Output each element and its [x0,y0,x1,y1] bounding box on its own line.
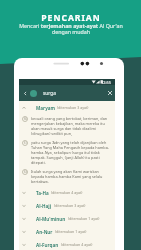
staticText: Ta-Ha [36,190,49,196]
staticText: (ditemukan 1 ayat) [68,216,100,221]
staticText: (ditemukan 4 ayat) [61,242,93,247]
staticText: 12:55 [101,80,111,85]
staticText: Mencari terjemahan ayat-ayat Al Qur'an d… [19,22,123,35]
button[interactable]: 60 [19,114,115,138]
button[interactable]: An-Nur [19,225,115,238]
staticText: yaitu surga 'Adn yang telah dijanjikan o… [31,140,110,165]
staticText: (ditemukan 4 ayat) [51,190,83,195]
button[interactable]: Maryam [19,101,115,114]
staticText: PENCARIAN [41,12,101,24]
staticText: 63 [24,170,27,174]
button[interactable]: Al-Hajj [19,199,115,212]
staticText: Al-Mu'minun [36,216,66,222]
staticText: 61 [24,141,27,145]
staticText: Itulah surga yang akan Kami wariskan kep… [31,169,110,184]
button[interactable]: 63 [19,167,115,186]
staticText: (ditemukan 3 ayat) [57,105,89,110]
staticText: (ditemukan 1 ayat) [55,229,87,234]
staticText: kecuali orang yang bertobat, beriman, da… [31,116,110,136]
button[interactable]: Al-Furqan [19,238,115,250]
staticText: Al-Hajj [36,203,52,209]
button[interactable]: Back [21,89,29,97]
staticText: An-Nur [36,229,53,235]
staticText: Al-Furqan [36,242,59,248]
button[interactable]: Ta-Ha [19,186,115,199]
button[interactable]: Clear search [106,89,114,97]
staticText: surga [43,90,56,97]
button[interactable]: Al-Mu'minun [19,212,115,225]
staticText: Maryam [36,105,55,111]
staticText: (ditemukan 3 ayat) [54,203,86,208]
button[interactable]: 61 [19,138,115,167]
staticText: 60 [24,117,27,121]
